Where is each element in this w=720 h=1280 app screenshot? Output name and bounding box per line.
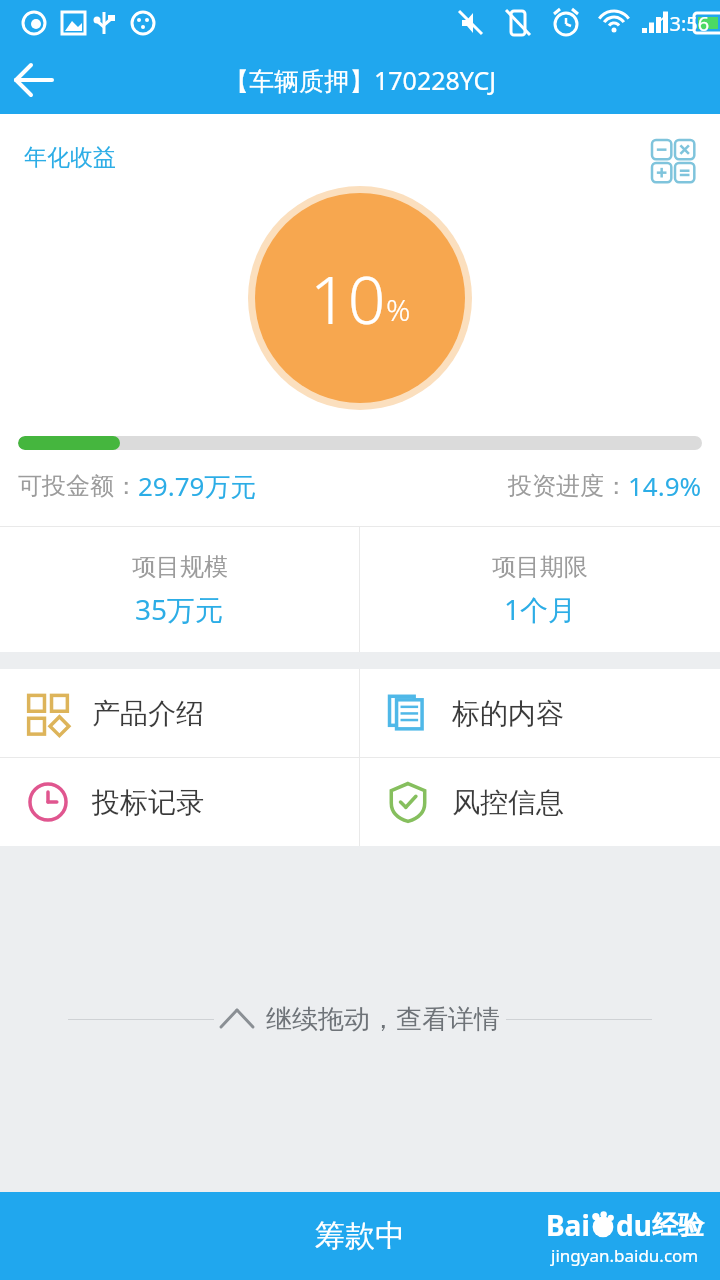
button[interactable]: Calculator xyxy=(652,140,698,186)
staticText: 标的内容 xyxy=(452,696,564,731)
staticText: 继续拖动，查看详情 xyxy=(266,1003,500,1036)
staticText: 35万元 xyxy=(135,590,224,628)
staticText: jingyan.baidu.com xyxy=(551,1244,699,1267)
button[interactable]: Back xyxy=(0,46,68,114)
staticText: % xyxy=(386,289,411,330)
staticText: 年化收益 xyxy=(24,143,116,172)
staticText: 1个月 xyxy=(504,590,577,628)
staticText: 【车辆质押】170228YCJ xyxy=(224,63,497,97)
staticText: du xyxy=(616,1206,652,1244)
button[interactable]: 项目期限 xyxy=(360,527,720,652)
staticText: 产品介绍 xyxy=(92,696,204,731)
staticText: Bai xyxy=(546,1206,590,1244)
staticText: 筹款中 xyxy=(315,1217,405,1255)
staticText: 14.9% xyxy=(628,468,702,503)
staticText: 10 xyxy=(310,253,386,343)
button[interactable]: 项目规模 xyxy=(0,527,359,652)
staticText: 投资进度： xyxy=(508,471,628,501)
button[interactable]: 标的内容 xyxy=(360,669,720,757)
button[interactable]: 筹款中 xyxy=(0,1192,720,1280)
staticText: 投标记录 xyxy=(92,785,204,820)
staticText: 项目期限 xyxy=(492,552,588,582)
staticText: 13:56 xyxy=(658,10,710,37)
staticText: 项目规模 xyxy=(132,552,228,582)
staticText: 风控信息 xyxy=(452,785,564,820)
staticText: 可投金额： xyxy=(18,471,138,501)
button[interactable]: 风控信息 xyxy=(360,758,720,846)
button[interactable]: 产品介绍 xyxy=(0,669,359,757)
staticText: 29.79万元 xyxy=(138,468,257,504)
button[interactable]: 投标记录 xyxy=(0,758,359,846)
staticText: 经验 xyxy=(652,1209,704,1242)
